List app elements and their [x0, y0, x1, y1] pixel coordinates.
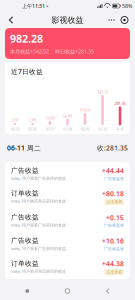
staticText: 06-09	[80, 126, 89, 131]
button[interactable]: 订单收益	[5, 256, 130, 279]
staticText: 2.81	[11, 117, 18, 122]
staticText: today, 用户观看广告获得的收益	[11, 246, 66, 251]
staticText: 58%	[122, 2, 132, 10]
staticText: 06-05	[10, 126, 19, 131]
button[interactable]: Back	[95, 284, 121, 297]
staticText: 06-10	[98, 126, 107, 131]
staticText: 281.35	[114, 101, 125, 106]
button[interactable]: Home	[54, 284, 80, 297]
staticText: 113.09	[79, 107, 90, 112]
button[interactable]: 广告收益	[5, 162, 130, 185]
staticText: 广告收益表	[104, 223, 124, 228]
staticText: +0.15	[106, 213, 124, 222]
staticText: 点击查看	[106, 270, 122, 275]
staticText: today, 用户购买商品获得的收益	[11, 198, 66, 204]
staticText: 影视收益	[51, 15, 83, 25]
staticText: 点击查看	[106, 200, 122, 204]
staticText: ●	[45, 4, 48, 7]
staticText: 本月收益+542.52	[10, 48, 49, 55]
button[interactable]: More	[105, 13, 118, 27]
staticText: 收:281.35	[97, 144, 128, 152]
staticText: today, 用户观看广告获得的收益	[11, 175, 66, 181]
staticText: today, 用户观看广告获得的收益	[11, 222, 66, 228]
button[interactable]: 订单收益	[5, 185, 130, 209]
staticText: 上午11:31	[22, 2, 45, 10]
staticText: 16.89	[45, 115, 54, 120]
staticText: 昨日收益+281.35	[55, 48, 94, 55]
button[interactable]: Recents	[14, 284, 40, 297]
staticText: 订单收益	[11, 259, 39, 267]
staticText: today, 用户购买商品获得的收益	[11, 268, 66, 274]
staticText: 06-07	[45, 126, 54, 131]
staticText: 广告收益	[11, 213, 39, 221]
staticText: 2.89	[29, 117, 36, 122]
staticText: 订单收益	[11, 189, 39, 197]
staticText: +44.38	[102, 259, 124, 268]
staticText: 347.17	[97, 89, 108, 94]
staticText: 56.89	[63, 113, 72, 118]
button[interactable]: 广告收益	[5, 232, 130, 256]
button[interactable]: 广告收益	[5, 209, 130, 232]
staticText: +10.16	[102, 236, 124, 245]
staticText: 06-11 周二	[7, 144, 41, 152]
staticText: 广告收益表	[104, 176, 124, 181]
staticText: 广告收益	[11, 236, 39, 245]
staticText: 广告收益表	[104, 246, 124, 251]
staticText: +44.44	[102, 166, 124, 175]
button[interactable]: Back	[4, 13, 18, 27]
staticText: 982.28	[10, 31, 43, 46]
button[interactable]: Target	[118, 13, 131, 27]
staticText: +80.18	[102, 189, 124, 198]
staticText: 06-08	[63, 126, 72, 131]
staticText: 06-06	[28, 126, 37, 131]
staticText: 今天	[116, 127, 124, 131]
staticText: 近7日收益	[11, 67, 43, 76]
staticText: 广告收益	[11, 166, 39, 174]
